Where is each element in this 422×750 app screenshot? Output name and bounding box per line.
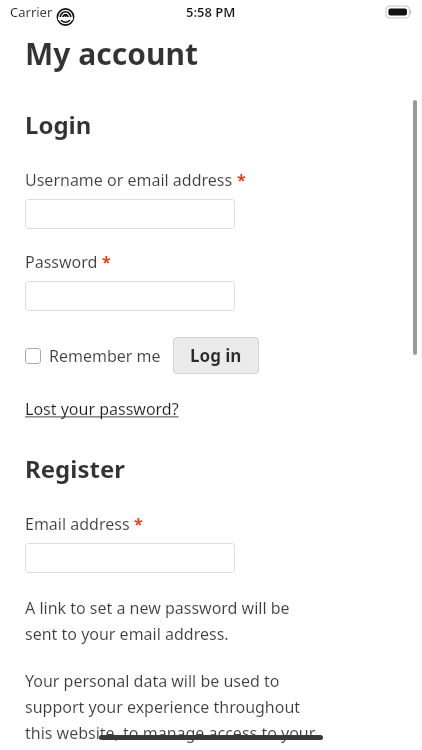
staticText: Password xyxy=(25,251,98,273)
button[interactable] xyxy=(25,281,235,311)
button[interactable] xyxy=(25,199,235,229)
staticText: * xyxy=(237,169,246,191)
staticText: Log in xyxy=(190,344,242,367)
button[interactable]: Log in xyxy=(173,337,259,374)
staticText: Carrier xyxy=(10,3,53,21)
staticText: Your personal data will be used to suppo… xyxy=(25,670,316,750)
staticText: Register xyxy=(25,452,125,485)
staticText: Username or email address xyxy=(25,169,233,191)
button[interactable] xyxy=(25,543,235,573)
staticText: Lost your password? xyxy=(25,398,179,420)
staticText: 5:58 PM xyxy=(186,3,236,21)
staticText: * xyxy=(134,513,143,535)
staticText: My account xyxy=(25,33,198,74)
staticText: Email address xyxy=(25,513,130,535)
staticText: Login xyxy=(25,108,92,141)
button[interactable]: Lost your password? xyxy=(25,398,179,420)
staticText: A link to set a new password will be sen… xyxy=(25,597,290,645)
staticText: Remember me xyxy=(49,345,161,367)
staticText: * xyxy=(102,251,111,273)
button[interactable]: Remember me xyxy=(25,345,165,367)
